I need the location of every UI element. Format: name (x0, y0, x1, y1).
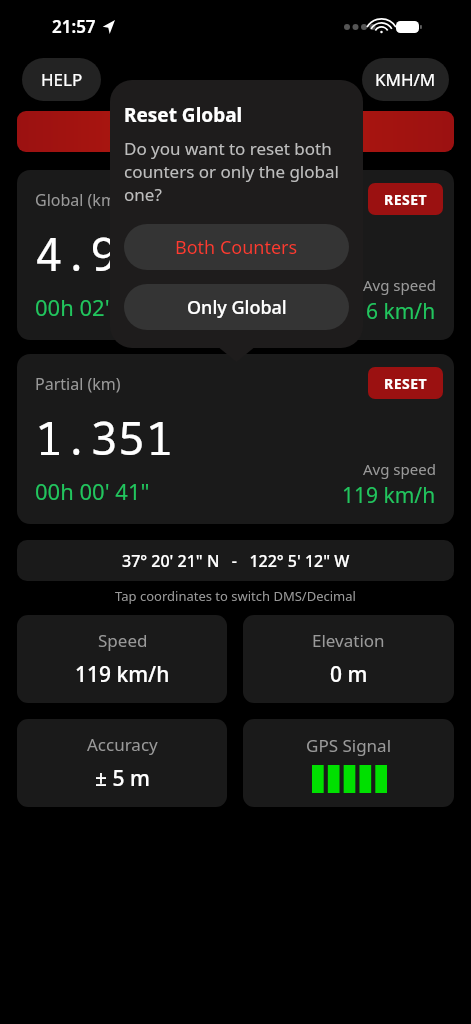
staticText: PAUSE (206, 120, 265, 143)
button[interactable]: Both Counters (124, 224, 349, 270)
button[interactable]: KMH/M (362, 58, 449, 101)
button[interactable]: Only Global (124, 284, 349, 330)
button[interactable]: GPS Signal (243, 719, 454, 807)
staticText: 0 m (330, 660, 368, 689)
staticText: 1.351 (35, 406, 174, 469)
staticText: Avg speed (363, 459, 436, 479)
button[interactable]: Speed (17, 615, 227, 703)
staticText: Speed (98, 629, 148, 652)
staticText: 00h 02' 35 (35, 292, 141, 322)
button[interactable]: RESET (368, 367, 443, 399)
staticText: Do you want to reset both counters or on… (124, 137, 349, 206)
staticText: Accuracy (87, 733, 158, 756)
staticText: Global (km) (35, 189, 121, 211)
staticText: RESET (384, 190, 428, 209)
staticText: Elevation (312, 629, 385, 652)
staticText: 4.9 (35, 222, 118, 285)
button[interactable]: RESET (368, 183, 443, 215)
staticText: Tap coordinates to switch DMS/Decimal (0, 587, 471, 605)
staticText: GPS Signal (306, 734, 392, 757)
button[interactable]: Accuracy (17, 719, 227, 807)
staticText: Partial (km) (35, 373, 121, 395)
staticText: Both Counters (175, 235, 298, 260)
staticText: Only Global (187, 295, 287, 320)
staticText: Reset Global (124, 102, 243, 128)
staticText: Avg speed (363, 275, 436, 295)
button[interactable]: Elevation (243, 615, 454, 703)
button[interactable]: 37° 20' 21" N - 122° 5' 12" W (17, 540, 454, 581)
staticText: 119 km/h (75, 660, 170, 689)
staticText: 119 km/h (342, 481, 436, 510)
staticText: 116 km/h (342, 297, 436, 326)
button[interactable]: PAUSE (17, 111, 454, 152)
staticText: 21:57 (52, 15, 96, 38)
staticText: 00h 00' 41" (35, 476, 150, 506)
staticText: 37° 20' 21" N - 122° 5' 12" W (122, 550, 350, 572)
staticText: HELP (41, 68, 83, 91)
button[interactable]: HELP (22, 58, 101, 101)
staticText: KMH/M (375, 68, 436, 91)
staticText: ± 5 m (95, 764, 150, 793)
staticText: RESET (384, 374, 428, 393)
